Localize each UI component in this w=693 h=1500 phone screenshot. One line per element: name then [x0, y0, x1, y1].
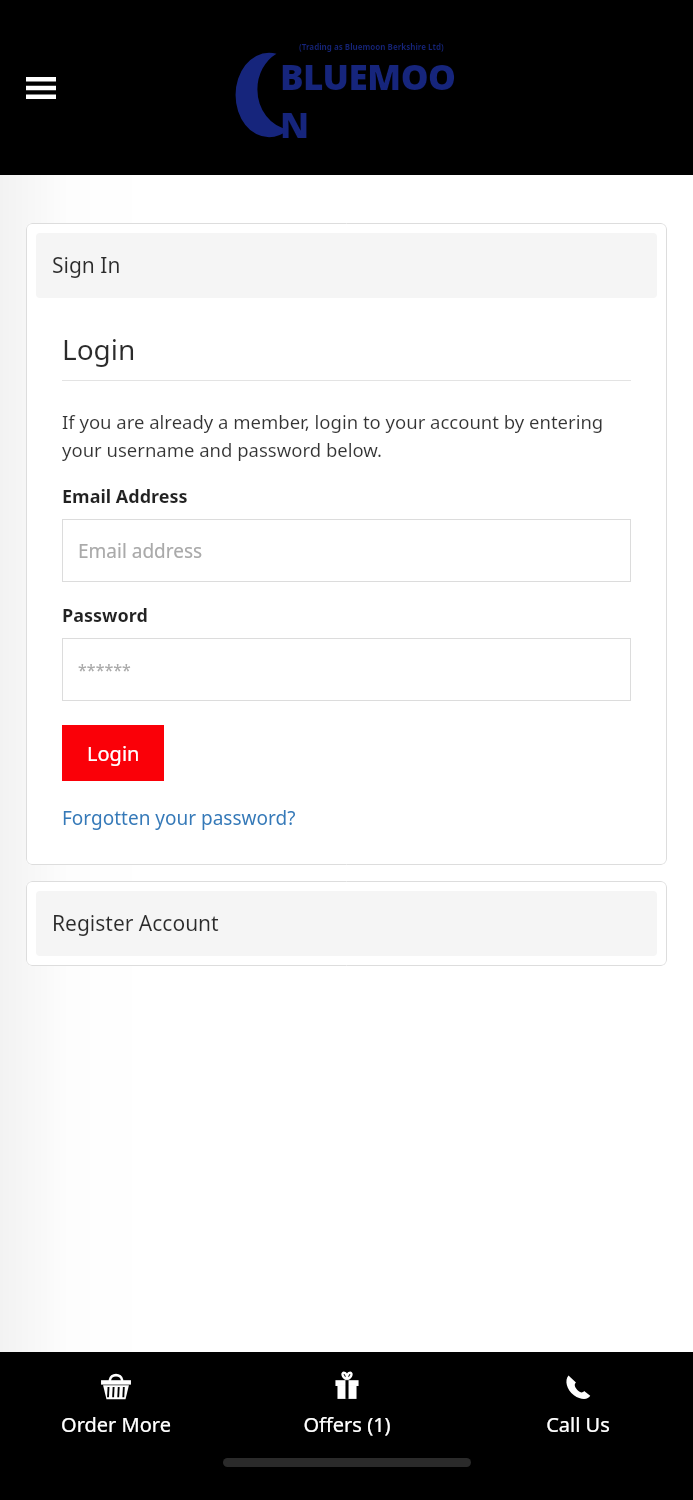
button[interactable]: Login	[62, 725, 164, 781]
staticText: Register Account	[52, 909, 219, 938]
staticText: ******	[78, 659, 131, 681]
staticText: Login	[87, 740, 140, 767]
staticText: If you are already a member, login to yo…	[62, 409, 631, 462]
button[interactable]: ******	[62, 638, 631, 701]
button[interactable]: Call Us	[462, 1352, 693, 1452]
staticText: Call Us	[546, 1411, 610, 1438]
button[interactable]: Order More	[0, 1352, 231, 1452]
staticText: Order More	[61, 1411, 171, 1438]
button[interactable]: Forgotten your password?	[62, 805, 296, 831]
staticText: Email address	[78, 538, 203, 564]
button[interactable]: Sign In	[36, 233, 657, 298]
button[interactable]: Menu	[14, 61, 68, 115]
staticText: BLUEMOON	[280, 53, 462, 141]
staticText: Email Address	[62, 484, 188, 509]
staticText: Password	[62, 603, 148, 628]
button[interactable]: Email address	[62, 519, 631, 582]
staticText: (Trading as Bluemoon Berkshire Ltd)	[299, 41, 444, 52]
staticText: Forgotten your password?	[62, 805, 296, 831]
staticText: Sign In	[52, 251, 121, 280]
button[interactable]: Register Account	[36, 891, 657, 956]
button[interactable]: Offers (1)	[231, 1352, 462, 1452]
staticText: Offers (1)	[303, 1411, 391, 1438]
staticText: Login	[62, 330, 136, 368]
